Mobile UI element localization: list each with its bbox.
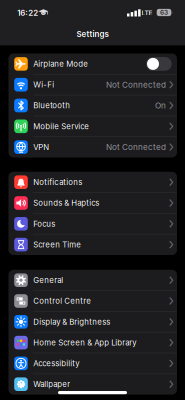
staticText: VPN <box>33 142 49 152</box>
staticText: Home Screen & App Library <box>33 338 136 347</box>
staticText: 63 <box>160 9 168 16</box>
staticText: Not Connected <box>106 80 166 90</box>
staticText: Screen Time <box>33 240 81 249</box>
staticText: Wallpaper <box>33 379 70 389</box>
staticText: Notifications <box>33 177 82 187</box>
staticText: Accessibility <box>33 359 79 368</box>
staticText: Mobile Service <box>33 122 89 131</box>
staticText: General <box>33 275 63 285</box>
staticText: Airplane Mode <box>33 59 88 69</box>
staticText: Sounds & Haptics <box>33 198 99 208</box>
staticText: Not Connected <box>106 142 166 152</box>
staticText: Wi-Fi <box>33 80 54 89</box>
staticText: Display & Brightness <box>33 317 110 326</box>
staticText: Control Centre <box>33 296 91 306</box>
staticText: 16:22 <box>17 8 38 18</box>
staticText: Settings <box>76 29 108 39</box>
staticText: LTE <box>142 9 153 17</box>
staticText: Focus <box>33 219 55 228</box>
staticText: On <box>155 101 166 110</box>
staticText: Bluetooth <box>33 101 70 110</box>
